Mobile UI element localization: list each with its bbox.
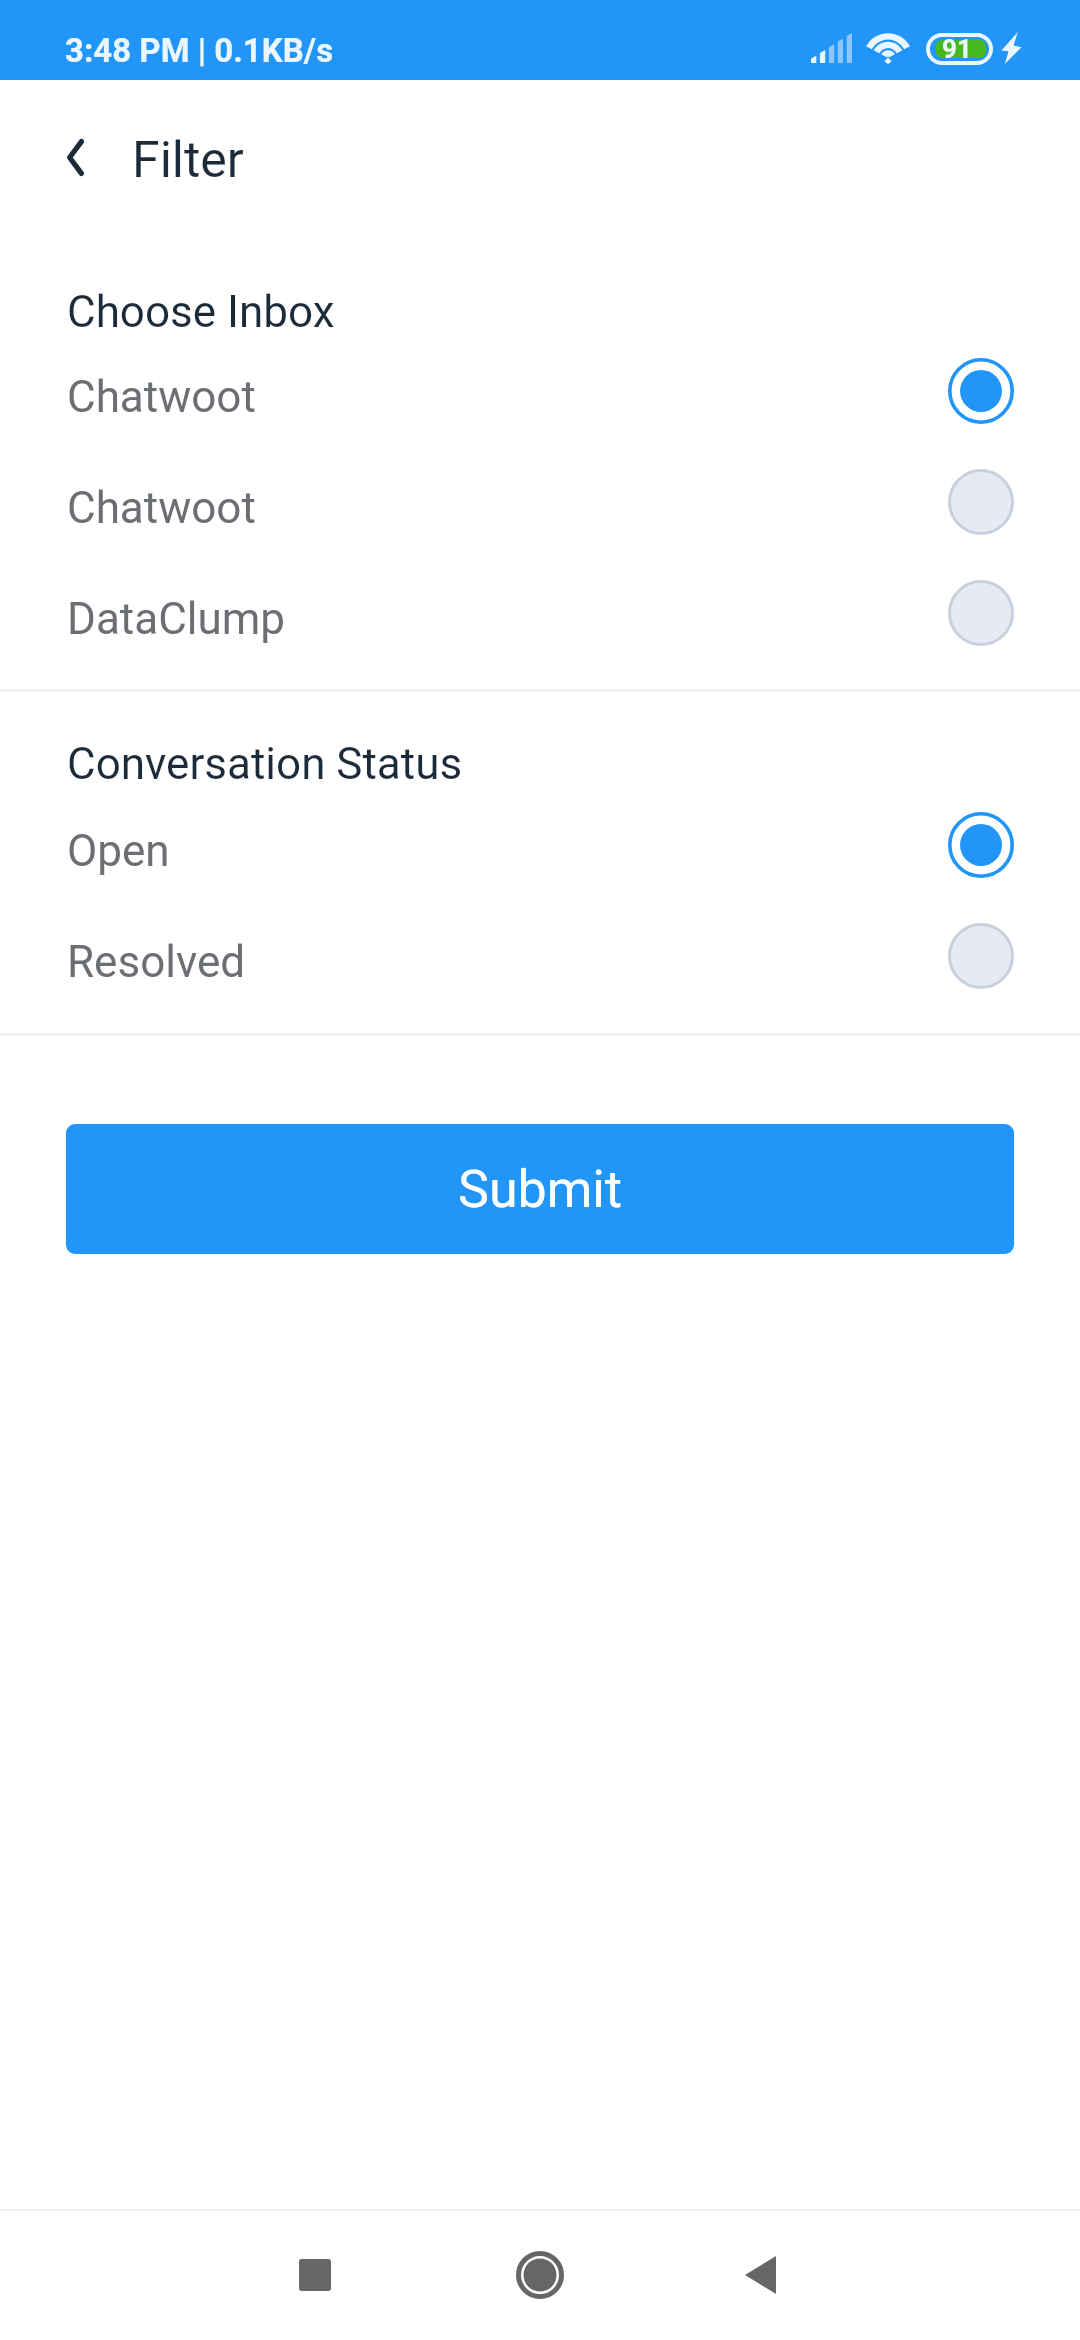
staticText: Chatwoot — [67, 371, 948, 423]
staticText: Chatwoot — [67, 482, 948, 534]
button[interactable]: Back — [36, 118, 114, 196]
staticText: Choose Inbox — [67, 286, 335, 338]
button[interactable]: Resolved — [0, 919, 1080, 992]
button[interactable]: Submit — [66, 1124, 1014, 1254]
button[interactable]: Home — [475, 2210, 605, 2340]
staticText: Submit — [458, 1159, 622, 1220]
staticText: 91 — [942, 34, 972, 64]
button[interactable]: DataClump — [0, 576, 1080, 649]
button[interactable]: Chatwoot — [0, 465, 1080, 538]
staticText: Resolved — [67, 936, 948, 988]
button[interactable]: Back — [695, 2210, 825, 2340]
button[interactable]: Recent apps — [250, 2210, 380, 2340]
staticText: Filter — [132, 131, 244, 190]
staticText: DataClump — [67, 593, 948, 645]
staticText: 3:48 PM | 0.1KB/s — [65, 31, 334, 70]
staticText: Open — [67, 825, 948, 877]
staticText: Conversation Status — [67, 738, 463, 790]
button[interactable]: Open — [0, 808, 1080, 881]
button[interactable]: Chatwoot — [0, 354, 1080, 427]
